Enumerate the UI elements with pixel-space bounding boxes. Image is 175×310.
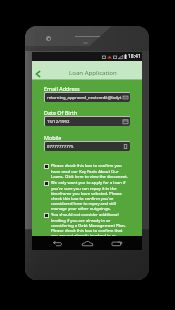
staticText: We only want you to apply for a loan if …	[51, 180, 130, 211]
button[interactable]: Home	[75, 237, 99, 249]
staticText: returning_approved_nextcredit@ladytoadgy	[47, 95, 123, 101]
button[interactable]: Back	[45, 237, 69, 249]
button[interactable]: 15/12/1992	[45, 117, 130, 126]
staticText: You should not consider additional lendi…	[51, 212, 130, 243]
staticText: Email Address	[44, 85, 80, 92]
staticText: 15/12/1992	[47, 119, 123, 125]
button[interactable]: Back	[33, 69, 43, 79]
staticText: Mobile	[44, 134, 62, 141]
staticText: 18:41	[128, 53, 141, 60]
staticText: 07777777775	[47, 144, 123, 150]
button[interactable]: returning_approved_nextcredit@ladytoadgy	[45, 93, 130, 102]
staticText: Date Of Birth	[44, 109, 78, 116]
staticText: Please check this box to confirm you hav…	[51, 163, 130, 179]
staticText: Loan Application	[69, 68, 117, 76]
button[interactable]: 07777777775	[45, 142, 130, 151]
button[interactable]: Recent apps	[105, 237, 129, 249]
button[interactable]: You should not consider additional lendi…	[44, 212, 130, 243]
button[interactable]: Please check this box to confirm you hav…	[44, 163, 130, 179]
button[interactable]: We only want you to apply for a loan if …	[44, 180, 130, 211]
